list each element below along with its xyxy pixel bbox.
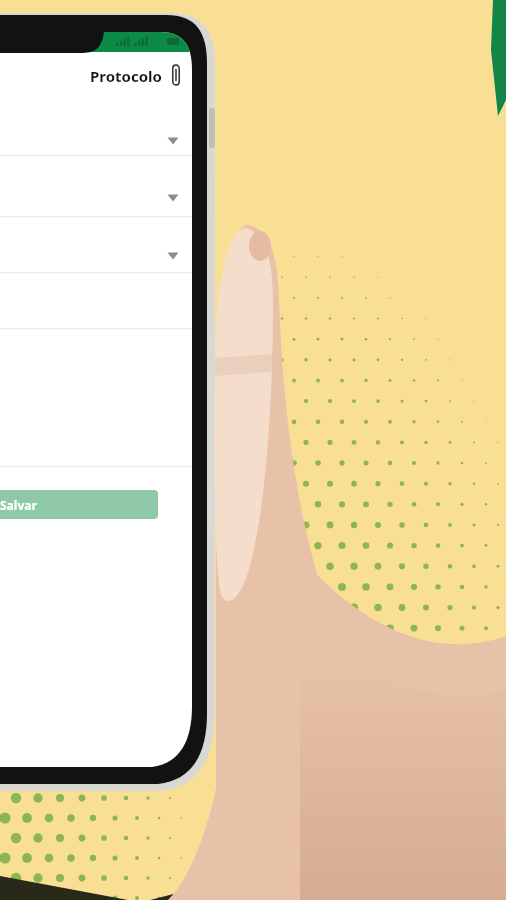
button[interactable]: Campo 1 [0, 108, 192, 164]
button[interactable]: Campo 3 [0, 222, 192, 278]
button[interactable]: Campo 2 [0, 165, 192, 221]
button[interactable]: Anexar arquivo [161, 60, 191, 90]
button[interactable]: Protocolo [0, 58, 160, 92]
staticText: Salvar [0, 497, 37, 513]
staticText: Protocolo [90, 66, 162, 86]
button[interactable]: Salvar [0, 490, 158, 519]
